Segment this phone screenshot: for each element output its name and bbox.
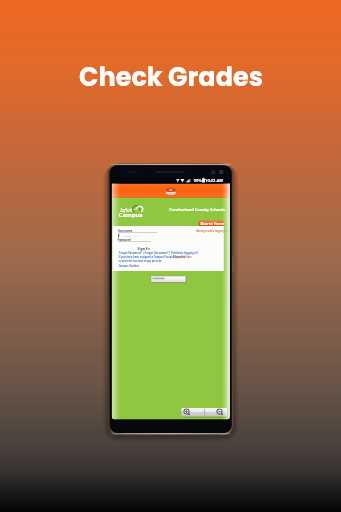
button[interactable]: Check Grades — [79, 59, 263, 95]
